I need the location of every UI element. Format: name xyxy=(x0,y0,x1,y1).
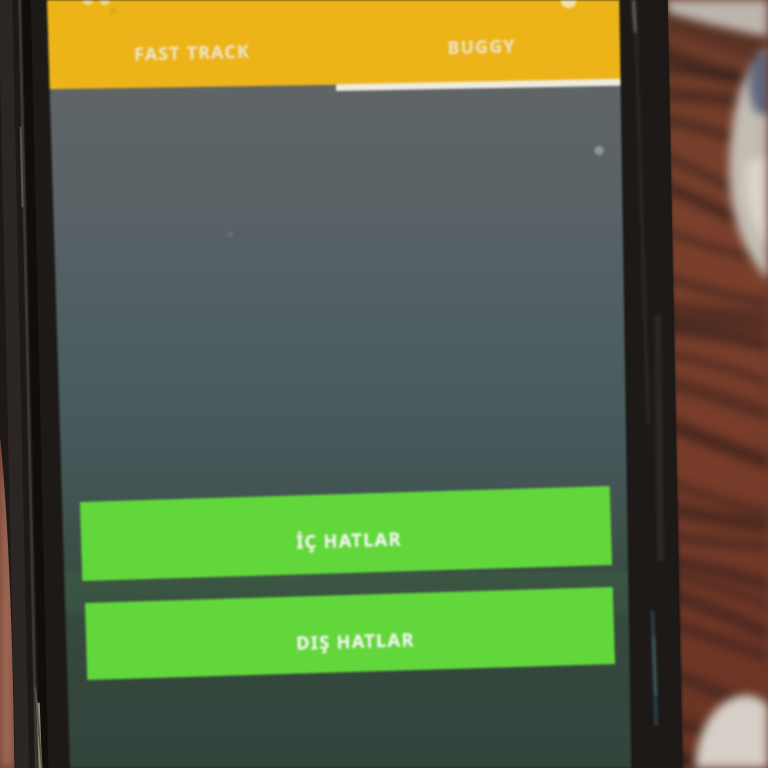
button[interactable]: FAST TRACK xyxy=(112,28,272,70)
button[interactable]: İÇ HATLAR xyxy=(80,486,612,581)
staticText: BUGGY xyxy=(447,33,516,59)
button[interactable]: BUGGY xyxy=(413,22,549,64)
staticText: DIŞ HATLAR xyxy=(296,627,416,656)
button[interactable]: DIŞ HATLAR xyxy=(85,587,615,680)
staticText: İÇ HATLAR xyxy=(296,526,403,554)
staticText: FAST TRACK xyxy=(134,38,250,65)
